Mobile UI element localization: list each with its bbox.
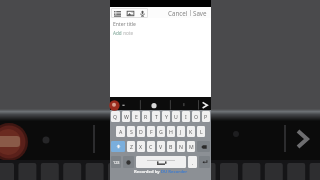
staticText: Save	[193, 9, 207, 16]
staticText: DU Recorder	[161, 169, 188, 175]
staticText: C	[149, 143, 153, 150]
button[interactable]: M	[187, 141, 195, 152]
staticText: Recorded by	[134, 169, 161, 175]
staticText: A	[119, 128, 123, 135]
button[interactable]: Numbers	[111, 156, 121, 168]
button[interactable]: B	[167, 141, 175, 152]
staticText: K	[189, 128, 193, 135]
staticText: F	[150, 128, 153, 135]
button[interactable]: .	[188, 156, 197, 168]
staticText: J	[180, 128, 182, 135]
button[interactable]: O	[192, 111, 200, 122]
staticText: .	[192, 159, 194, 166]
staticText: O	[194, 113, 199, 120]
button[interactable]: U	[172, 111, 180, 122]
button[interactable]: I	[182, 111, 190, 122]
staticText: Z	[130, 143, 133, 150]
button[interactable]: L	[197, 126, 205, 137]
staticText: N	[179, 143, 183, 150]
button[interactable]: A	[116, 126, 125, 137]
staticText: X	[139, 143, 143, 150]
staticText: R	[144, 113, 148, 120]
staticText: M	[189, 143, 194, 150]
button[interactable]: G	[157, 126, 165, 137]
button[interactable]: E	[132, 111, 140, 122]
button[interactable]: Backspace	[197, 141, 210, 152]
staticText: Q	[113, 113, 118, 120]
staticText: P	[204, 113, 208, 120]
button[interactable]: N	[177, 141, 185, 152]
staticText: Enter title	[113, 21, 136, 28]
button[interactable]: Q	[111, 111, 120, 122]
staticText: Cancel	[168, 9, 188, 16]
staticText: S	[130, 128, 133, 135]
staticText: V	[159, 143, 163, 150]
staticText: E	[135, 113, 138, 120]
staticText: 123	[113, 160, 120, 165]
staticText: Y	[165, 113, 168, 120]
staticText: I	[185, 113, 187, 120]
button[interactable]: S	[127, 126, 135, 137]
staticText: L	[200, 128, 203, 135]
button[interactable]: Z	[127, 141, 135, 152]
staticText: W	[124, 113, 129, 120]
staticText: D	[139, 128, 143, 135]
button[interactable]: Save	[192, 7, 208, 18]
button[interactable]: Emoji	[123, 156, 134, 168]
button[interactable]: J	[177, 126, 185, 137]
button[interactable]: T	[152, 111, 160, 122]
button[interactable]: Space	[136, 156, 186, 168]
button[interactable]: Shift	[111, 141, 125, 152]
button[interactable]: H	[167, 126, 175, 137]
button[interactable]: X	[137, 141, 145, 152]
button[interactable]: R	[142, 111, 150, 122]
button[interactable]: Checklist	[111, 8, 124, 18]
button[interactable]: K	[187, 126, 195, 137]
button[interactable]: Voice note	[136, 8, 148, 18]
button[interactable]: Cancel	[167, 7, 189, 18]
button[interactable]: D	[137, 126, 145, 137]
button[interactable]: Enter	[199, 156, 210, 168]
button[interactable]: Add image	[124, 8, 136, 18]
button[interactable]: Y	[162, 111, 170, 122]
staticText: note	[122, 30, 134, 36]
staticText: G	[159, 128, 163, 135]
button[interactable]: C	[147, 141, 155, 152]
staticText: Add	[113, 30, 122, 36]
button[interactable]: V	[157, 141, 165, 152]
button[interactable]: Suggestions	[110, 97, 211, 110]
button[interactable]: F	[147, 126, 155, 137]
button[interactable]: P	[202, 111, 210, 122]
button[interactable]: W	[122, 111, 130, 122]
staticText: T	[155, 113, 158, 120]
staticText: U	[174, 113, 178, 120]
staticText: B	[169, 143, 173, 150]
staticText: H	[169, 128, 173, 135]
